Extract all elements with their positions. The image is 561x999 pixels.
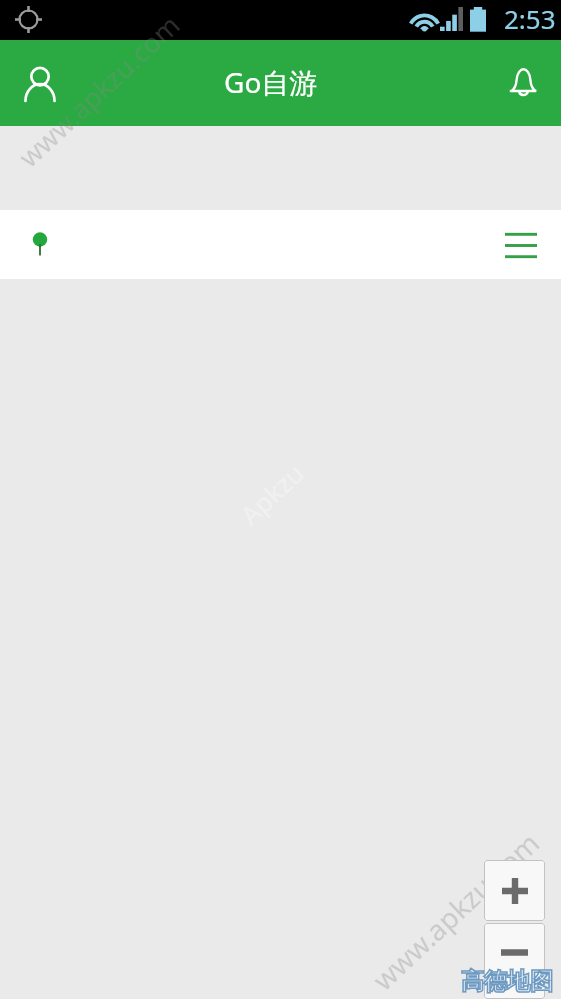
staticText: 2:53 <box>504 1 556 36</box>
button[interactable]: Account <box>0 40 86 126</box>
staticText: Go自游 <box>224 63 318 101</box>
button[interactable]: Zoom out <box>484 923 545 999</box>
button[interactable]: Zoom in <box>484 860 545 921</box>
button[interactable]: Current location <box>18 223 62 267</box>
staticText: 高德地图 <box>461 967 553 996</box>
staticText: www.apkzu.com <box>10 6 188 175</box>
button[interactable]: Notifications <box>475 40 561 126</box>
staticText: www.apkzu.com <box>364 824 547 998</box>
button[interactable]: Menu <box>501 225 541 265</box>
staticText: 高德地图 <box>461 967 553 996</box>
button[interactable]: Current location <box>0 210 561 279</box>
